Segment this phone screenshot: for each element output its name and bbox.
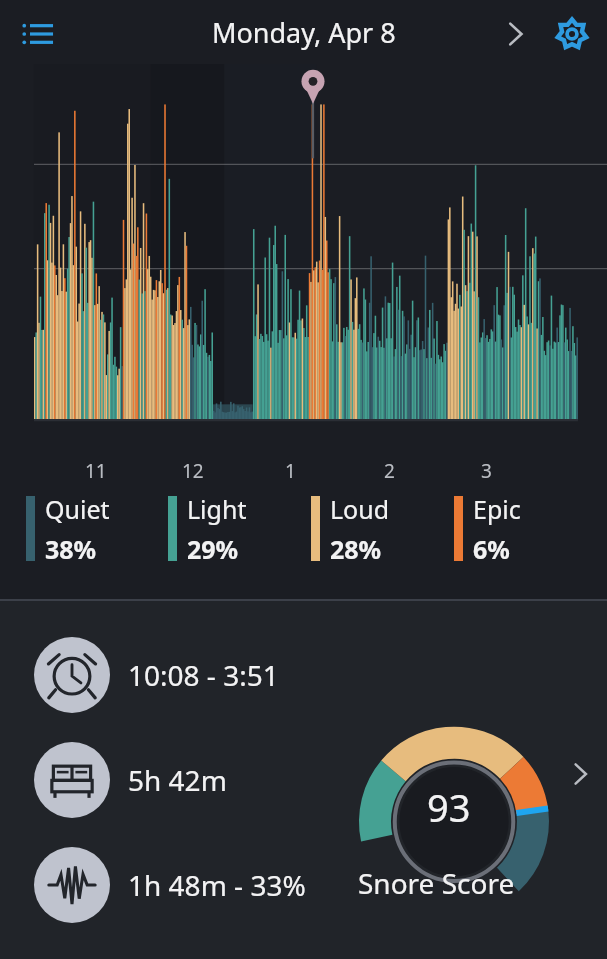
button[interactable]: Next day [493, 12, 537, 56]
staticText: 29% [187, 532, 239, 566]
staticText: 12 [182, 458, 204, 484]
staticText: 3 [481, 458, 492, 484]
button[interactable]: Light [168, 492, 311, 566]
button[interactable]: 5h 42m [34, 742, 227, 818]
staticText: Epic [473, 492, 521, 526]
staticText: 1h 48m - 33% [128, 866, 306, 904]
button[interactable]: More [557, 751, 603, 797]
staticText: 38% [45, 532, 97, 566]
button[interactable]: 1h 48m - 33% [34, 847, 306, 923]
staticText: 5h 42m [128, 761, 227, 799]
staticText: Light [187, 492, 247, 526]
staticText: 28% [330, 532, 382, 566]
staticText: 11 [85, 458, 107, 484]
staticText: 93 [427, 781, 471, 833]
button[interactable]: Snore Score details [355, 689, 555, 834]
button[interactable]: Quiet [26, 492, 168, 566]
staticText: 10:08 - 3:51 [128, 656, 279, 694]
staticText: Loud [330, 492, 390, 526]
staticText: 2 [384, 458, 395, 484]
staticText: 1 [285, 458, 296, 484]
staticText: Monday, Apr 8 [212, 14, 396, 51]
button[interactable]: 10:08 - 3:51 [34, 637, 279, 713]
button[interactable]: Epic [454, 492, 597, 566]
staticText: Snore Score [358, 864, 515, 902]
staticText: 6% [473, 532, 510, 566]
staticText: Quiet [45, 492, 110, 526]
button[interactable]: Loud [311, 492, 454, 566]
button[interactable]: Settings [547, 9, 597, 59]
button[interactable]: Menu [12, 8, 64, 60]
